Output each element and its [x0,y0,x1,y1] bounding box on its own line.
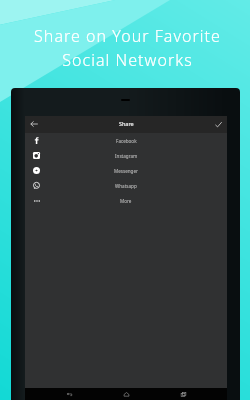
staticText: Whatsapp [115,183,137,189]
button[interactable]: More [25,193,227,208]
staticText: Share [119,120,134,127]
staticText: Facebook [116,138,137,144]
button[interactable]: Facebook [25,133,227,148]
button[interactable]: Instagram [25,148,227,163]
button[interactable]: Recent apps [170,388,196,400]
button[interactable]: Done [210,116,227,132]
button[interactable]: Back [56,388,82,400]
staticText: Instagram [115,153,138,159]
button[interactable]: Whatsapp [25,178,227,193]
button[interactable]: Messenger [25,163,227,178]
button[interactable]: Home [113,388,139,400]
staticText: Messenger [114,168,138,174]
staticText: More [120,198,132,204]
staticText: Share on Your Favorite Social Networks [34,25,221,70]
button[interactable]: Navigate up [25,116,42,132]
